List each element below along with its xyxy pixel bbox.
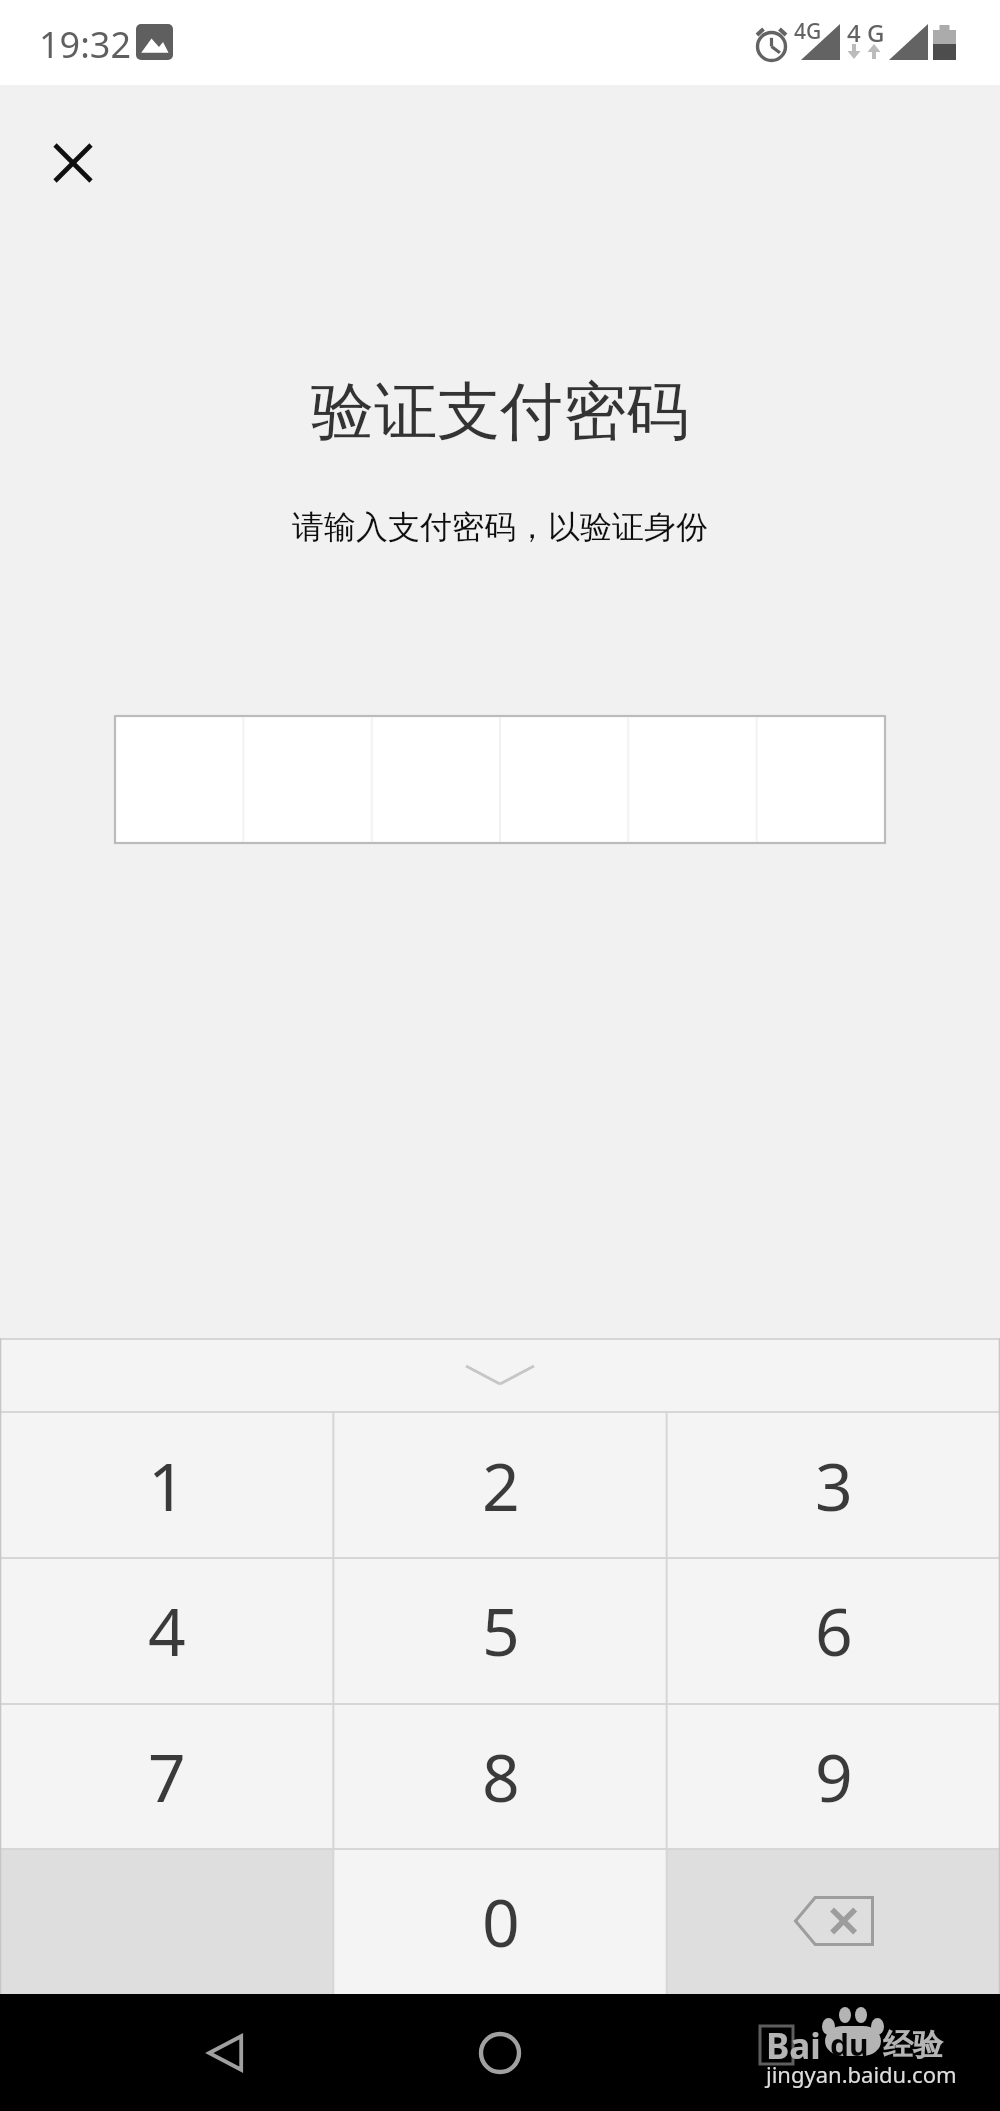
button[interactable]: 0	[334, 1848, 667, 1994]
staticText: 1	[148, 1440, 186, 1530]
button[interactable]: 2	[334, 1412, 667, 1557]
staticText: du	[830, 2024, 869, 2065]
staticText: Bai	[766, 2022, 821, 2070]
button[interactable]: 6	[667, 1557, 1000, 1703]
button[interactable]: Close	[30, 120, 115, 205]
staticText: 经验	[883, 2026, 943, 2064]
button[interactable]: 3	[667, 1412, 1000, 1557]
staticText: 4G	[794, 17, 822, 46]
staticText: 19:32	[39, 20, 132, 69]
staticText: 7	[148, 1731, 186, 1821]
button[interactable]: 5	[334, 1557, 667, 1703]
staticText: 4	[148, 1585, 186, 1675]
staticText: 验证支付密码	[311, 372, 689, 451]
staticText: 请输入支付密码，以验证身份	[292, 507, 708, 547]
button[interactable]: Backspace	[667, 1848, 1000, 1994]
button[interactable]: 7	[0, 1703, 334, 1848]
button[interactable]: 9	[667, 1703, 1000, 1848]
button[interactable]: 8	[334, 1703, 667, 1848]
staticText: 2	[482, 1440, 520, 1530]
button[interactable]: Hide keyboard	[0, 1338, 1000, 1412]
staticText: 0	[482, 1876, 520, 1966]
staticText: jingyan.baidu.com	[766, 2059, 957, 2089]
button[interactable]: 4	[0, 1557, 334, 1703]
button[interactable]: 1	[0, 1412, 334, 1557]
staticText: 6	[815, 1585, 853, 1675]
staticText: 9	[815, 1731, 853, 1821]
button[interactable]: Home	[460, 1994, 540, 2111]
staticText: 5	[482, 1585, 520, 1675]
staticText: 4 G	[847, 16, 885, 49]
staticText: 8	[482, 1731, 520, 1821]
staticText: 3	[815, 1440, 853, 1530]
button[interactable]: Back	[188, 1994, 264, 2111]
